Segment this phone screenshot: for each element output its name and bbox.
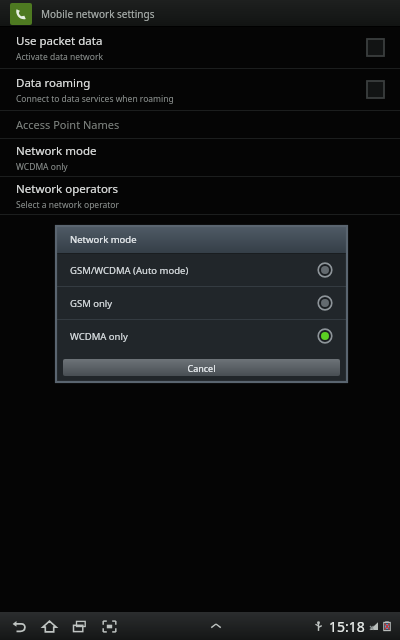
staticText: Connect to data services when roaming: [16, 93, 174, 105]
staticText: 15:18: [329, 617, 365, 636]
button[interactable]: Expand: [205, 615, 227, 637]
button[interactable]: Recent apps: [68, 615, 90, 637]
staticText: Network operators: [16, 181, 119, 197]
button[interactable]: Data roaming checkbox: [367, 81, 384, 98]
staticText: Cancel: [187, 362, 216, 374]
button[interactable]: Home: [38, 615, 60, 637]
button[interactable]: Use packet data: [0, 27, 400, 68]
button[interactable]: Network operators: [0, 177, 400, 214]
staticText: GSM only: [70, 297, 317, 310]
button[interactable]: Use packet data checkbox: [367, 39, 384, 56]
staticText: Network mode: [16, 143, 97, 159]
staticText: Data roaming: [16, 75, 91, 91]
button[interactable]: Network mode: [0, 139, 400, 176]
staticText: Network mode: [70, 233, 137, 246]
staticText: Mobile network settings: [41, 7, 155, 21]
staticText: Use packet data: [16, 33, 103, 49]
staticText: WCDMA only: [16, 161, 68, 173]
button[interactable]: Cancel: [63, 359, 340, 376]
button[interactable]: Full screen: [98, 615, 120, 637]
button[interactable]: Back: [8, 615, 30, 637]
button[interactable]: Access Point Names: [0, 111, 400, 138]
button[interactable]: WCDMA only: [56, 320, 347, 352]
staticText: GSM/WCDMA (Auto mode): [70, 264, 317, 277]
staticText: Access Point Names: [16, 117, 120, 132]
button[interactable]: GSM only: [56, 287, 347, 319]
staticText: Select a network operator: [16, 199, 119, 211]
button[interactable]: GSM/WCDMA (Auto mode): [56, 254, 347, 286]
button[interactable]: Data roaming: [0, 69, 400, 110]
staticText: Activate data network: [16, 51, 103, 63]
staticText: WCDMA only: [70, 330, 317, 343]
button[interactable]: Phone app icon: [10, 3, 32, 25]
